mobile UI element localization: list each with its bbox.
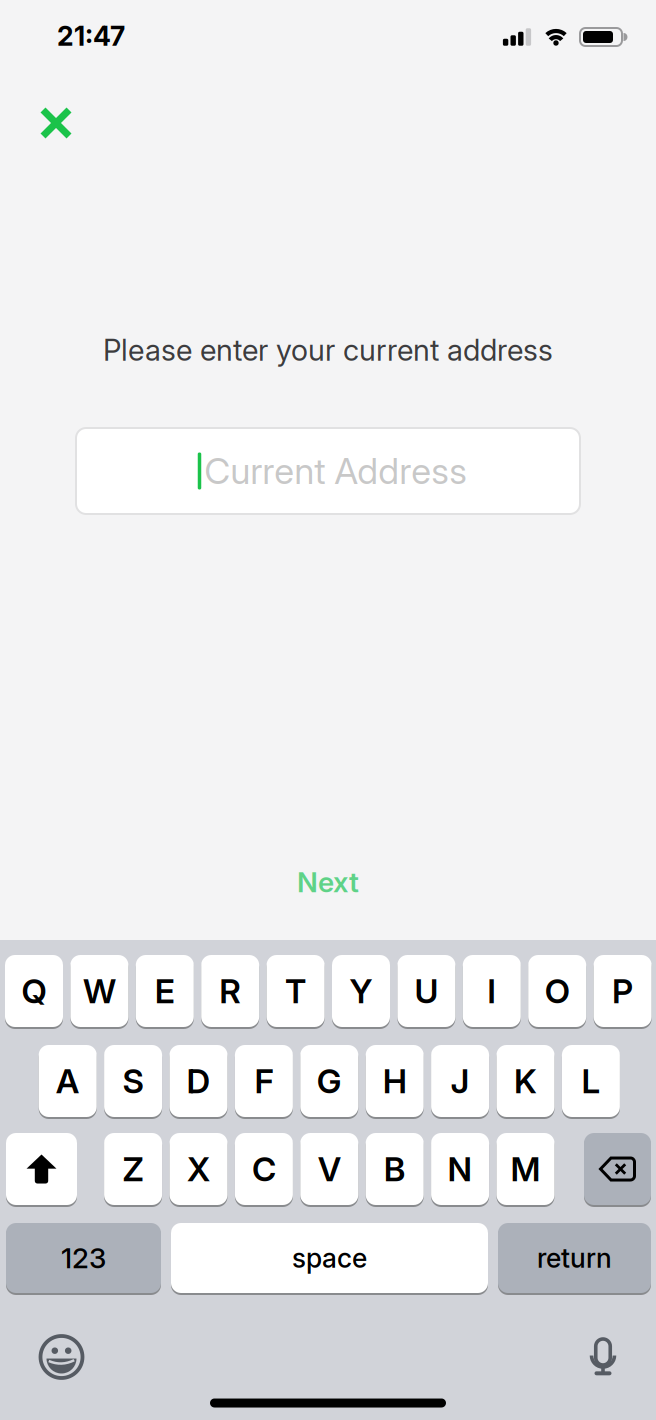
staticText: Z bbox=[123, 1149, 144, 1189]
button[interactable]: D bbox=[169, 1044, 227, 1118]
button[interactable]: F bbox=[235, 1044, 293, 1118]
button[interactable]: I bbox=[463, 954, 521, 1028]
staticText: G bbox=[317, 1061, 342, 1101]
button[interactable]: Close bbox=[34, 101, 78, 145]
staticText: P bbox=[612, 971, 633, 1011]
button[interactable]: U bbox=[397, 954, 455, 1028]
button[interactable]: P bbox=[594, 954, 652, 1028]
staticText: A bbox=[56, 1061, 80, 1101]
staticText: Please enter your current address bbox=[103, 333, 553, 367]
staticText: E bbox=[155, 971, 175, 1011]
staticText: U bbox=[414, 971, 438, 1011]
staticText: T bbox=[285, 971, 306, 1011]
button[interactable]: E bbox=[136, 954, 194, 1028]
staticText: Q bbox=[21, 971, 46, 1011]
button[interactable]: W bbox=[70, 954, 128, 1028]
staticText: N bbox=[448, 1149, 473, 1189]
staticText: J bbox=[451, 1061, 470, 1101]
staticText: O bbox=[545, 971, 570, 1011]
staticText: Y bbox=[349, 971, 372, 1011]
button[interactable]: T bbox=[267, 954, 325, 1028]
button[interactable]: C bbox=[235, 1132, 293, 1206]
button[interactable]: R bbox=[201, 954, 259, 1028]
button[interactable]: J bbox=[431, 1044, 489, 1118]
staticText: 21:47 bbox=[57, 20, 125, 52]
button[interactable]: Dictate bbox=[581, 1330, 625, 1386]
staticText: B bbox=[384, 1149, 406, 1189]
button[interactable]: 123 bbox=[6, 1222, 161, 1294]
button[interactable]: M bbox=[496, 1132, 554, 1206]
button[interactable]: Shift bbox=[6, 1132, 77, 1206]
button[interactable]: Z bbox=[104, 1132, 162, 1206]
button[interactable]: Delete bbox=[584, 1132, 651, 1206]
staticText: Current Address bbox=[204, 450, 467, 492]
staticText: space bbox=[292, 1242, 367, 1274]
staticText: R bbox=[219, 971, 241, 1011]
button[interactable]: V bbox=[300, 1132, 358, 1206]
staticText: D bbox=[186, 1061, 210, 1101]
button[interactable]: Q bbox=[5, 954, 63, 1028]
staticText: W bbox=[83, 971, 116, 1011]
button[interactable]: Y bbox=[332, 954, 390, 1028]
staticText: X bbox=[187, 1149, 210, 1189]
button[interactable]: return bbox=[498, 1222, 651, 1294]
staticText: M bbox=[510, 1149, 540, 1189]
button[interactable]: O bbox=[528, 954, 586, 1028]
button[interactable]: A bbox=[39, 1044, 97, 1118]
button[interactable]: Next bbox=[248, 852, 408, 912]
button[interactable]: L bbox=[562, 1044, 620, 1118]
button[interactable]: X bbox=[169, 1132, 227, 1206]
button[interactable]: space bbox=[171, 1222, 488, 1294]
button[interactable]: Current Address bbox=[76, 428, 580, 514]
button[interactable]: B bbox=[366, 1132, 424, 1206]
staticText: Next bbox=[297, 865, 359, 898]
staticText: L bbox=[581, 1061, 600, 1101]
staticText: F bbox=[254, 1061, 273, 1101]
staticText: H bbox=[383, 1061, 407, 1101]
staticText: K bbox=[514, 1061, 537, 1101]
button[interactable]: N bbox=[431, 1132, 489, 1206]
button[interactable]: K bbox=[496, 1044, 554, 1118]
staticText: 123 bbox=[61, 1241, 106, 1274]
staticText: C bbox=[252, 1149, 276, 1189]
button[interactable]: Emoji bbox=[33, 1329, 89, 1385]
staticText: V bbox=[318, 1149, 341, 1189]
button[interactable]: S bbox=[104, 1044, 162, 1118]
staticText: S bbox=[123, 1061, 144, 1101]
staticText: return bbox=[537, 1242, 612, 1274]
button[interactable]: G bbox=[300, 1044, 358, 1118]
button[interactable]: H bbox=[366, 1044, 424, 1118]
staticText: I bbox=[487, 971, 496, 1011]
